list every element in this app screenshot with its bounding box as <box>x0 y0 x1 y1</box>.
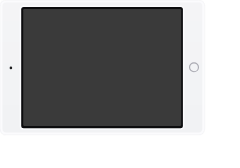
button[interactable]: Tablet device preview <box>0 0 240 168</box>
